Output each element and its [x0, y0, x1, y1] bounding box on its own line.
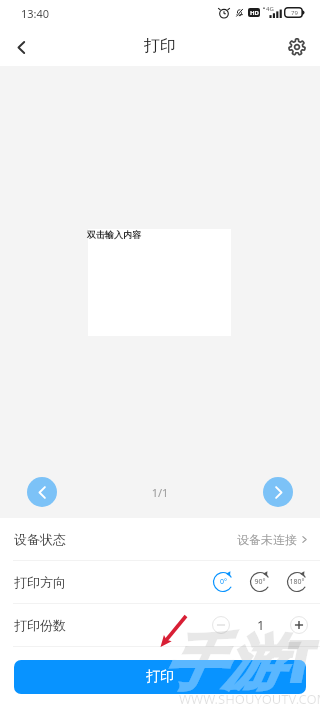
staticText: 手游TV — [163, 619, 320, 701]
staticText: 1 — [257, 616, 265, 634]
staticText: 双击输入内容 — [87, 229, 141, 240]
staticText: 设备未连接 — [237, 532, 297, 547]
button[interactable]: Previous page — [27, 477, 57, 507]
staticText: 打印份数 — [14, 617, 66, 633]
button[interactable]: 打印 — [14, 660, 306, 694]
button[interactable]: Increase copies — [290, 616, 308, 634]
button[interactable]: 双击输入内容 — [88, 229, 231, 336]
staticText: 手游TV — [163, 619, 320, 701]
staticText: 4G — [266, 5, 274, 13]
button[interactable]: 180° — [286, 571, 308, 593]
staticText: 13:40 — [21, 6, 50, 21]
staticText: 1/1 — [0, 485, 320, 500]
staticText: 90° — [254, 577, 266, 587]
staticText: 设备状态 — [14, 531, 66, 547]
button[interactable]: 0° — [212, 571, 234, 593]
staticText: 180° — [289, 577, 305, 587]
button[interactable]: Decrease copies — [212, 616, 230, 634]
staticText: 79 — [291, 9, 298, 17]
button[interactable]: 90° — [249, 571, 271, 593]
button[interactable]: Back — [2, 28, 40, 66]
staticText: 打印方向 — [14, 574, 66, 590]
staticText: 0° — [220, 577, 227, 587]
staticText: WWW.SHOUYOUTV.COM — [179, 690, 320, 708]
staticText: 打印 — [144, 36, 176, 56]
staticText: HD — [250, 9, 259, 17]
button[interactable]: 设备状态 — [0, 518, 320, 560]
button[interactable]: Settings — [278, 28, 316, 66]
staticText: 打印 — [146, 668, 174, 686]
button[interactable]: Next page — [263, 477, 293, 507]
